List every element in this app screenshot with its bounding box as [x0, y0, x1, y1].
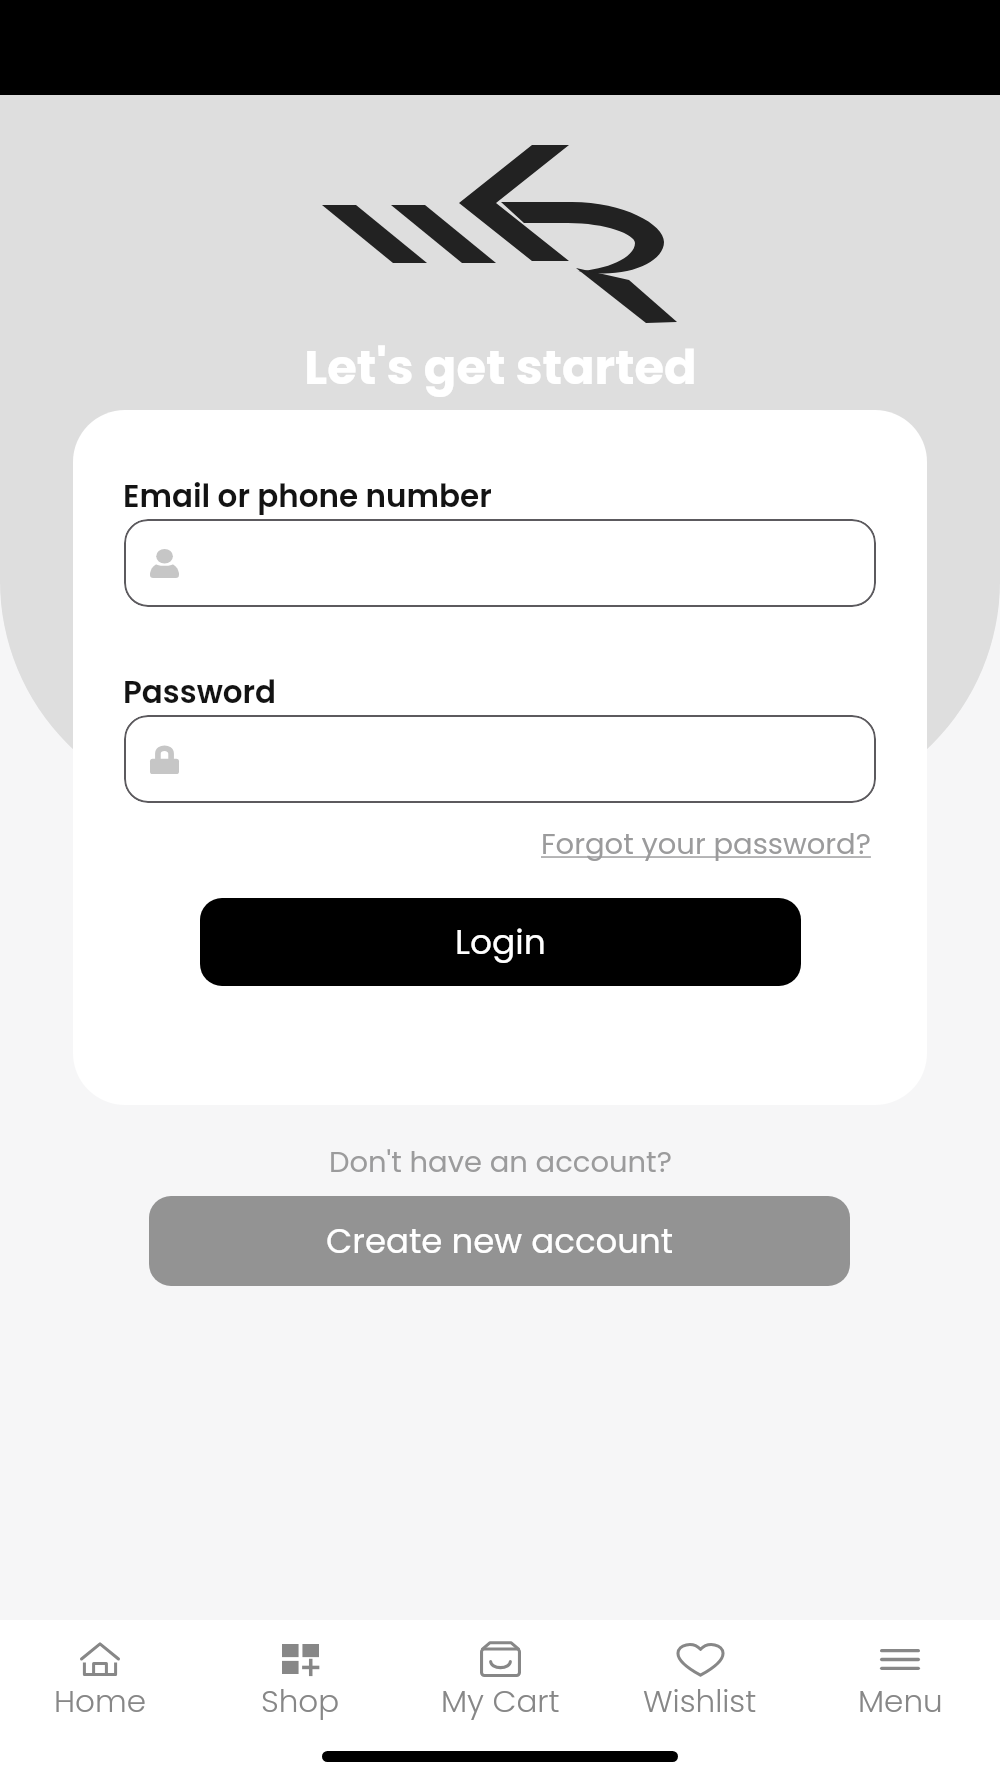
button[interactable]: My Cart — [400, 1620, 600, 1722]
staticText: Shop — [261, 1679, 340, 1722]
staticText: Password — [123, 670, 277, 713]
staticText: Login — [455, 918, 546, 966]
staticText: Wishlist — [643, 1679, 757, 1722]
staticText: Create new account — [326, 1217, 674, 1265]
button[interactable]: Shop — [200, 1620, 400, 1722]
button[interactable]: Home — [0, 1620, 200, 1722]
staticText: My Cart — [441, 1679, 560, 1722]
button[interactable]: Create new account — [149, 1196, 850, 1286]
staticText: Forgot your password? — [541, 824, 871, 865]
button[interactable]: Forgot your password? — [533, 818, 879, 871]
staticText: Menu — [858, 1679, 943, 1722]
staticText: Home — [54, 1679, 146, 1722]
button[interactable]: Login — [200, 898, 801, 986]
button[interactable]: Wishlist — [600, 1620, 800, 1722]
button[interactable]: Menu — [800, 1620, 1000, 1722]
staticText: Email or phone number — [123, 474, 492, 517]
staticText: Don't have an account? — [329, 1142, 672, 1183]
staticText: Let's get started — [304, 334, 697, 401]
button[interactable]: Password — [124, 715, 876, 803]
button[interactable]: Email or phone number — [124, 519, 876, 607]
